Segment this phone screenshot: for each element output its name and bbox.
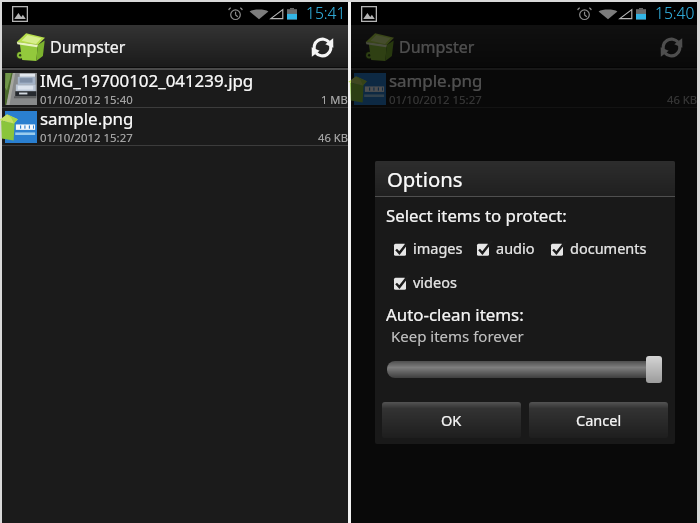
staticText: Dumpster [399, 36, 475, 58]
button[interactable]: OK [382, 402, 521, 438]
button[interactable]: sample.png [351, 70, 697, 108]
staticText: 15:40 [655, 2, 695, 23]
staticText: sample.png [389, 69, 483, 92]
staticText: sample.png [40, 107, 134, 130]
staticText: documents [570, 238, 647, 258]
staticText: 01/10/2012 15:40 [40, 92, 133, 106]
staticText: IMG_19700102_041239.jpg [40, 69, 254, 92]
staticText: audio [496, 238, 535, 258]
staticText: 15:41 [306, 2, 346, 23]
button[interactable]: audio [477, 238, 535, 258]
button[interactable]: images [394, 238, 463, 258]
button[interactable]: documents [551, 238, 647, 258]
button[interactable]: sample.png [2, 108, 348, 146]
staticText: 46 KB [318, 130, 348, 144]
button[interactable]: IMG_19700102_041239.jpg [2, 70, 348, 108]
staticText: Auto-clean items: [386, 303, 524, 326]
staticText: images [413, 238, 463, 258]
button[interactable]: Refresh [302, 27, 342, 67]
staticText: 1 MB [321, 92, 348, 106]
staticText: videos [413, 272, 457, 292]
staticText: Options [387, 165, 463, 193]
button[interactable]: Cancel [529, 402, 668, 438]
staticText: 01/10/2012 15:27 [389, 92, 482, 106]
button[interactable]: Auto-clean period slider [646, 356, 662, 383]
staticText: 01/10/2012 15:27 [40, 130, 133, 144]
staticText: Select items to protect: [386, 204, 567, 227]
button[interactable]: videos [394, 272, 457, 292]
button[interactable]: Refresh [651, 27, 691, 67]
staticText: Dumpster [50, 36, 126, 58]
staticText: Keep items forever [391, 326, 524, 346]
staticText: OK [441, 410, 462, 430]
staticText: 46 KB [667, 92, 697, 106]
staticText: Cancel [576, 410, 622, 430]
